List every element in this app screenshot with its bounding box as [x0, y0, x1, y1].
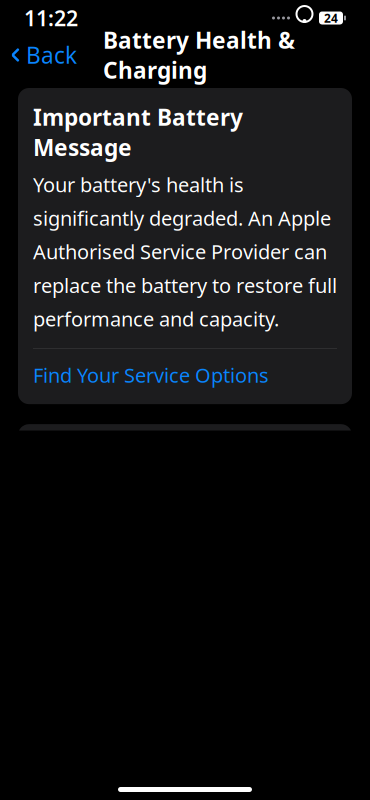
staticText: Your battery's health is significantly d…: [33, 171, 337, 332]
button[interactable]: Find Your Service Options: [33, 349, 337, 401]
button[interactable]: Back: [0, 34, 77, 76]
staticText: Find Your Service Options: [33, 362, 269, 388]
staticText: 11:22: [24, 4, 78, 32]
staticText: Your battery is currently supporting nor…: [33, 709, 248, 799]
staticText: Back: [26, 40, 77, 70]
staticText: Battery Health & Charging: [103, 25, 295, 85]
staticText: Important Battery Message: [33, 102, 243, 162]
staticText: 24: [324, 10, 338, 26]
